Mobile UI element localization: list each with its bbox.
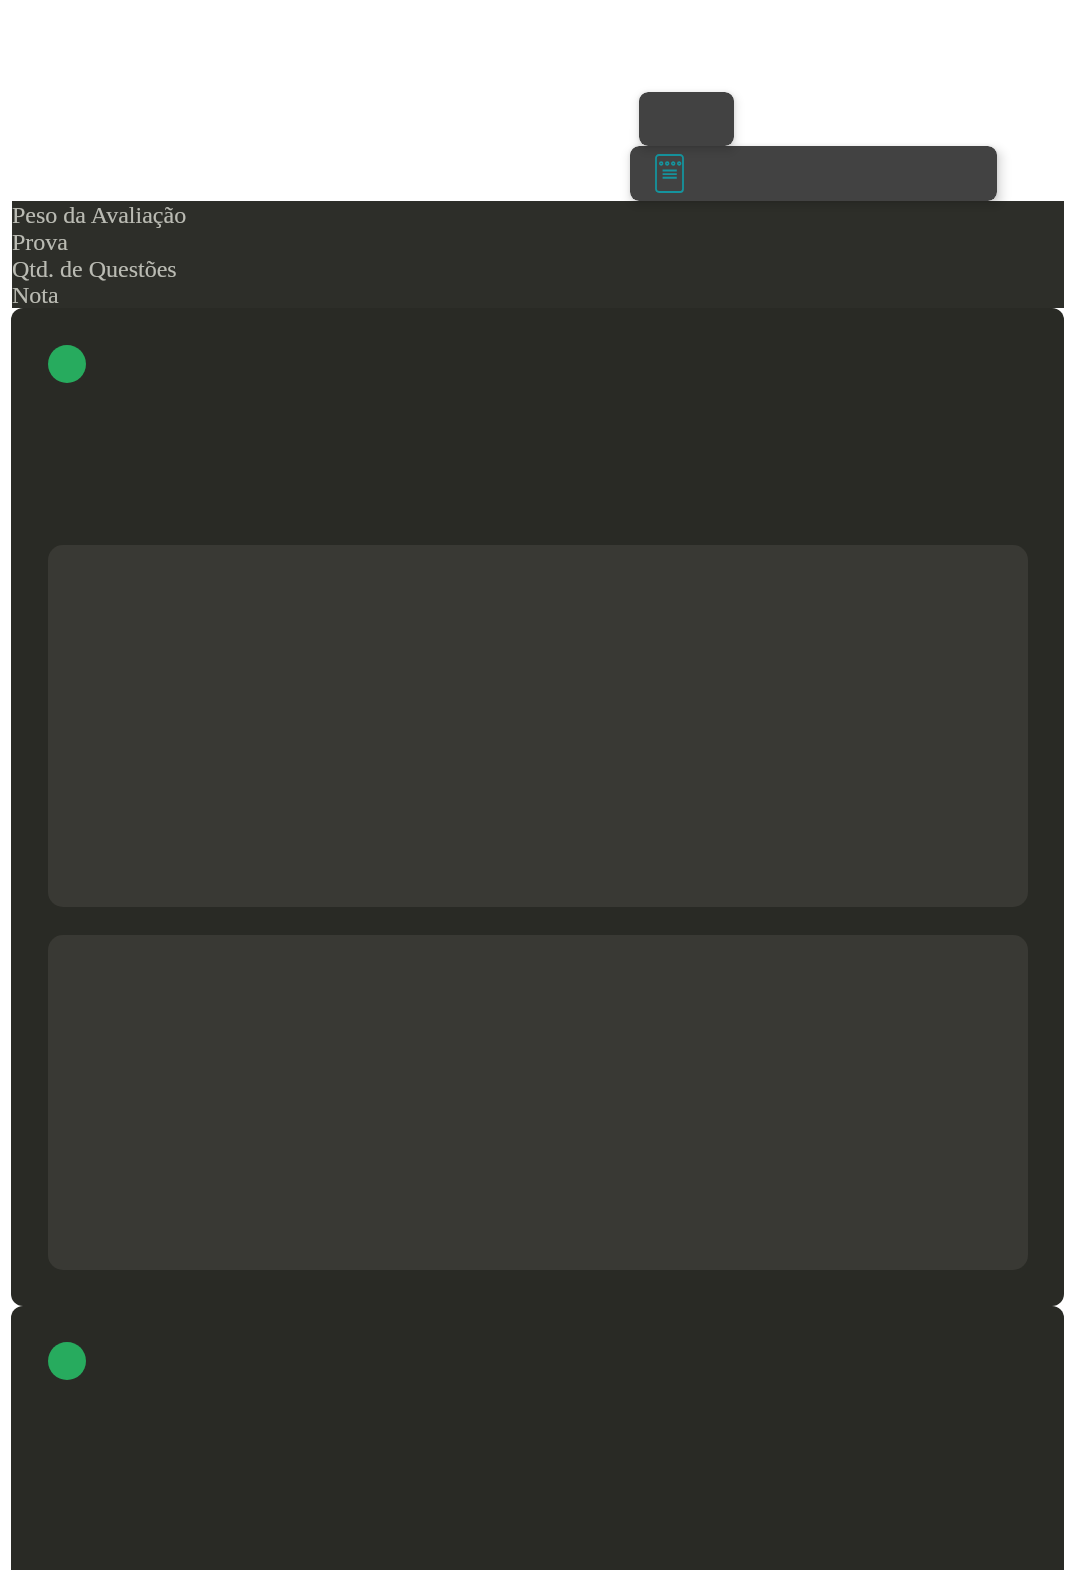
staticText: Nota <box>12 282 59 309</box>
button[interactable] <box>11 1306 1064 1570</box>
button[interactable] <box>11 308 1064 1306</box>
staticText: Peso da Avaliação <box>12 202 187 229</box>
button[interactable] <box>639 92 734 146</box>
button[interactable] <box>630 146 997 201</box>
staticText: Qtd. de Questões <box>12 256 177 283</box>
staticText: Prova <box>12 229 68 256</box>
